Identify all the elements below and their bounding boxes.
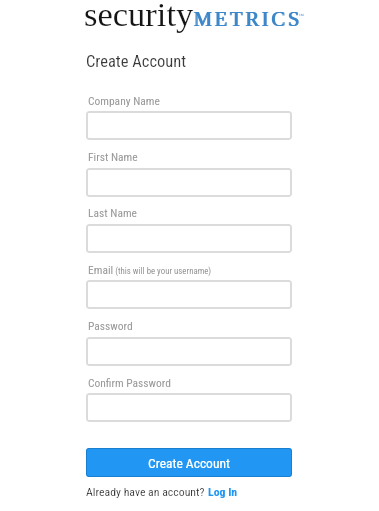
- button[interactable]: [86, 224, 292, 253]
- button[interactable]: [86, 111, 292, 140]
- staticText: Create Account: [148, 455, 230, 471]
- staticText: Last Name: [88, 206, 137, 219]
- button[interactable]: Log In: [208, 485, 238, 499]
- staticText: First Name: [88, 150, 138, 163]
- staticText: Email (this will be your username): [88, 263, 212, 276]
- button[interactable]: Create Account: [86, 448, 292, 477]
- staticText: Password: [88, 319, 133, 332]
- staticText: Already have an account?: [86, 485, 208, 499]
- staticText: Company Name: [88, 94, 160, 107]
- staticText: securityMETRICS™: [84, 0, 304, 33]
- button[interactable]: [86, 280, 292, 309]
- button[interactable]: [86, 168, 292, 197]
- staticText: Create Account: [86, 52, 187, 71]
- staticText: securityMETRICS: [85, 0, 300, 33]
- staticText: Confirm Password: [88, 376, 171, 389]
- button[interactable]: [86, 393, 292, 422]
- staticText: Log In: [208, 485, 238, 499]
- button[interactable]: [86, 337, 292, 366]
